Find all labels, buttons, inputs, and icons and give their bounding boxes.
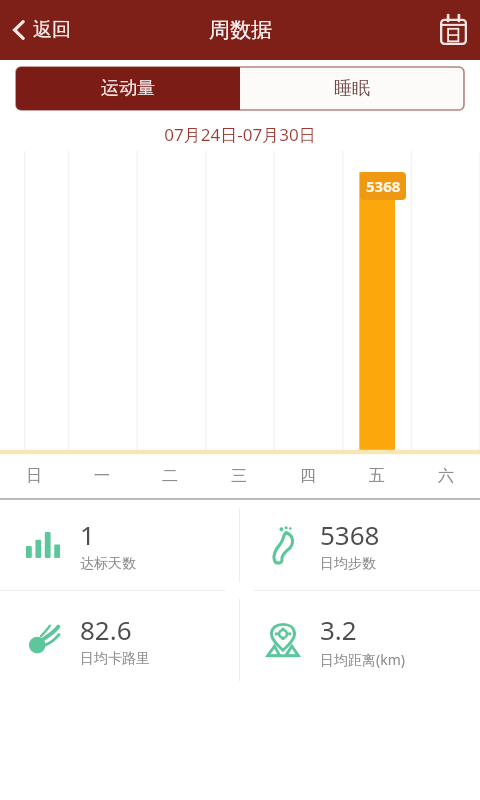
button[interactable]: 82.6	[0, 591, 239, 689]
button[interactable]: 返回	[0, 0, 85, 60]
staticText: 日均步数	[320, 555, 376, 573]
button[interactable]: 1	[0, 500, 239, 590]
button[interactable]: 5368	[240, 500, 480, 590]
staticText: 5368	[366, 176, 401, 196]
button[interactable]: Monthly calendar	[426, 0, 480, 60]
staticText: 82.6	[80, 612, 132, 647]
staticText: 二	[162, 466, 178, 486]
staticText: 三	[231, 466, 247, 486]
staticText: 日	[26, 466, 42, 486]
staticText: 日均卡路里	[80, 650, 150, 668]
staticText: 5368	[320, 517, 380, 552]
staticText: 六	[438, 466, 454, 486]
staticText: 日均距离(km)	[320, 650, 405, 669]
staticText: 睡眠	[334, 77, 370, 100]
staticText: 达标天数	[80, 555, 136, 573]
staticText: 3.2	[320, 612, 357, 647]
staticText: 运动量	[101, 77, 155, 100]
staticText: 周数据	[209, 17, 272, 43]
staticText: 07月24日-07月30日	[164, 123, 316, 146]
staticText: 1	[80, 517, 95, 552]
staticText: 四	[300, 466, 316, 486]
staticText: 返回	[33, 18, 71, 42]
button[interactable]: 3.2	[240, 591, 480, 689]
staticText: 五	[369, 466, 385, 486]
button[interactable]: 睡眠	[240, 67, 464, 110]
staticText: 一	[94, 466, 110, 486]
button[interactable]: 运动量	[16, 67, 240, 110]
